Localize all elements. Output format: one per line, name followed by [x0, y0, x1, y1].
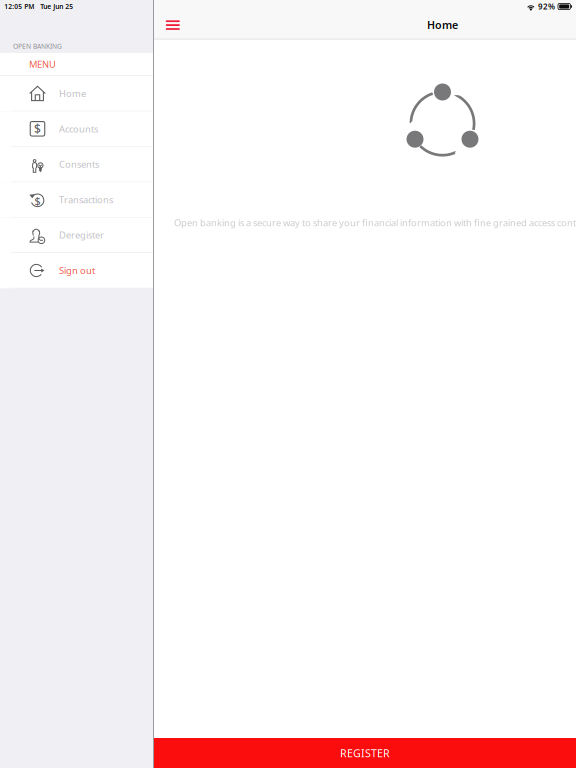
staticText: 12:05 PM — [4, 2, 34, 11]
staticText: OPEN BANKING — [13, 42, 62, 50]
button[interactable]: Sign out — [0, 253, 153, 288]
button[interactable]: Deregister — [0, 218, 153, 253]
staticText: $ — [34, 121, 41, 137]
staticText: Home — [427, 18, 458, 32]
button[interactable]: $ — [0, 182, 153, 218]
staticText: MENU — [29, 58, 56, 70]
staticText: Accounts — [59, 123, 98, 135]
button[interactable]: Consents — [0, 147, 153, 182]
staticText: 92% — [538, 1, 555, 12]
staticText: $ — [34, 194, 40, 208]
staticText: Deregister — [59, 229, 104, 241]
staticText: Home — [59, 87, 86, 100]
staticText: Open banking is a secure way to share yo… — [174, 216, 576, 229]
staticText: Transactions — [59, 193, 113, 206]
button[interactable]: REGISTER — [154, 738, 576, 768]
staticText: Consents — [59, 158, 99, 170]
button[interactable]: $ — [0, 111, 153, 147]
button[interactable]: Open navigation menu — [160, 13, 186, 37]
button[interactable]: MENU — [0, 53, 153, 76]
button[interactable]: Home — [0, 76, 153, 111]
staticText: Tue Jun 25 — [40, 2, 73, 11]
staticText: Sign out — [59, 264, 95, 277]
staticText: REGISTER — [340, 746, 390, 760]
